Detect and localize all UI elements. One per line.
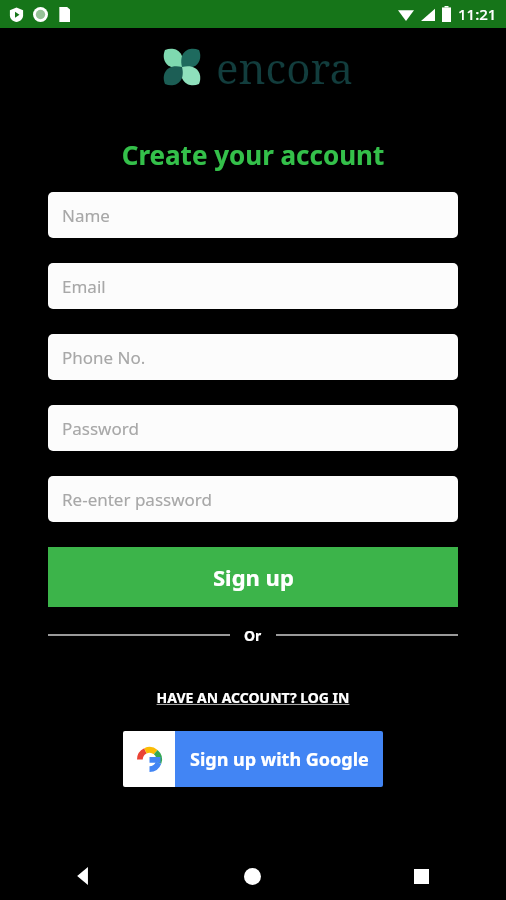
button[interactable]: Home	[168, 852, 337, 900]
button[interactable]: Sign up	[48, 547, 458, 607]
staticText: Phone No.	[62, 346, 146, 369]
staticText: encora	[216, 39, 354, 96]
button[interactable]: Sign up with Google	[123, 731, 383, 787]
staticText: Or	[244, 626, 262, 645]
button[interactable]: Back	[0, 852, 168, 900]
staticText: Sign up with Google	[190, 747, 369, 772]
button[interactable]: Password	[48, 405, 458, 451]
staticText: 11:21	[458, 4, 497, 24]
staticText: Create your account	[0, 137, 506, 172]
button[interactable]: Phone No.	[48, 334, 458, 380]
staticText: Name	[62, 204, 110, 227]
staticText: Sign up	[213, 562, 294, 592]
button[interactable]: HAVE AN ACCOUNT? LOG IN	[0, 685, 506, 710]
staticText: Email	[62, 275, 106, 298]
button[interactable]: Re-enter password	[48, 476, 458, 522]
button[interactable]: Email	[48, 263, 458, 309]
staticText: Re-enter password	[62, 488, 212, 511]
staticText: Password	[62, 417, 139, 440]
button[interactable]: Recent apps	[337, 852, 506, 900]
button[interactable]: Name	[48, 192, 458, 238]
